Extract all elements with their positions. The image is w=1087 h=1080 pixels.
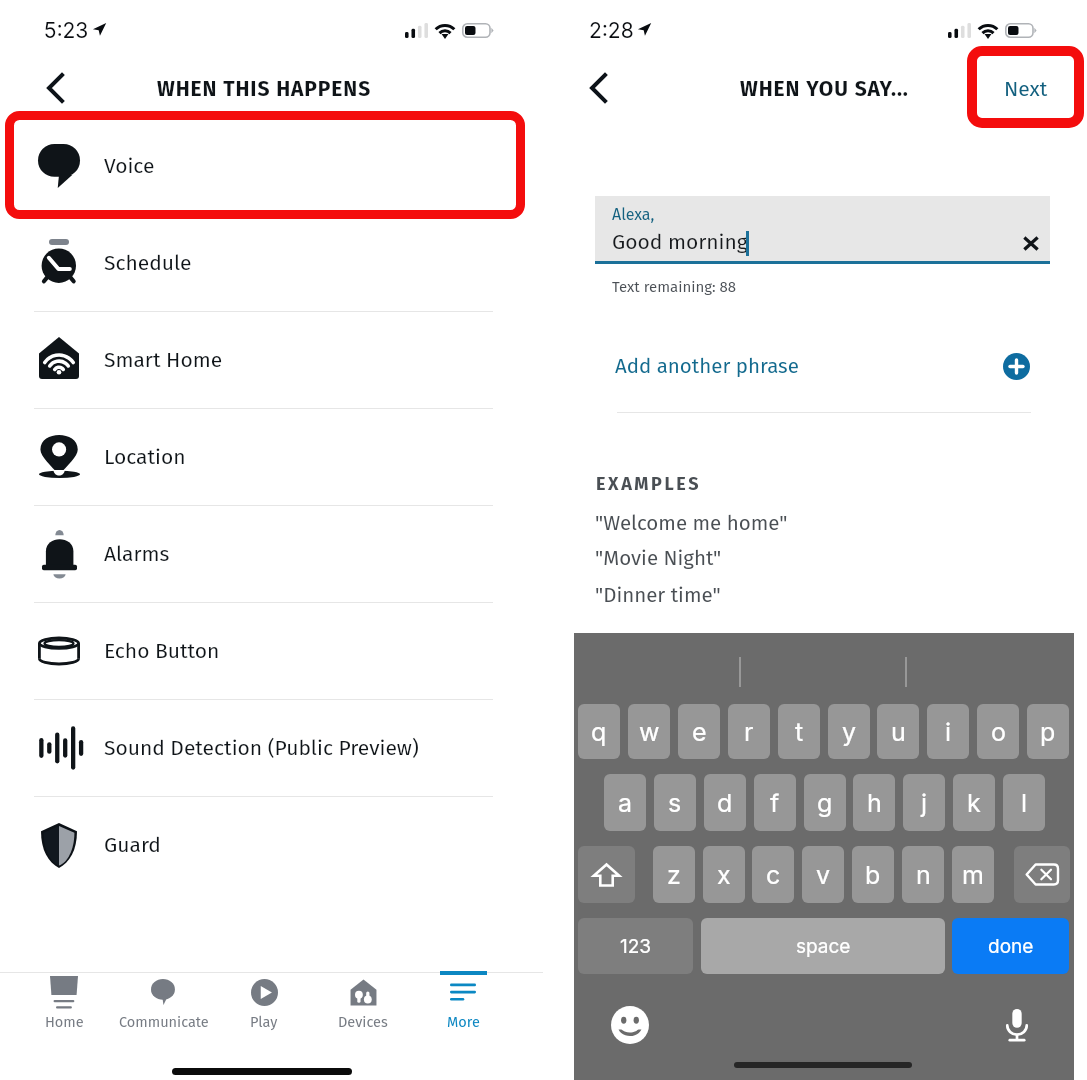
button[interactable]: Back [30,64,78,112]
staticText: Home [45,1013,84,1030]
button[interactable]: done [952,918,1069,974]
staticText: f [770,788,780,818]
staticText: Next [1004,76,1048,101]
button[interactable]: space [701,918,945,974]
button[interactable]: Play [214,973,314,1035]
button[interactable]: Backspace [1014,846,1070,903]
staticText: Text remaining: 88 [612,278,737,296]
staticText: "Dinner time" [595,583,721,608]
button[interactable]: t [778,704,820,759]
button[interactable]: d [704,774,746,831]
button[interactable]: c [752,846,794,903]
staticText: "Movie Night" [595,546,722,571]
staticText: y [842,717,857,747]
button[interactable]: Smart Home [0,311,543,408]
button[interactable]: z [653,846,695,903]
button[interactable]: Schedule [0,214,543,311]
staticText: w [639,717,660,747]
button[interactable]: Location [0,408,543,505]
staticText: Alexa, [612,205,655,224]
staticText: d [717,788,733,818]
staticText: t [795,717,804,747]
staticText: Alarms [104,541,170,566]
button[interactable]: Dictation [999,1005,1035,1045]
staticText: Good morning [612,229,748,254]
button[interactable]: n [902,846,944,903]
staticText: q [591,717,607,747]
button[interactable]: h [853,774,895,831]
staticText: Communicate [119,1013,209,1030]
button[interactable]: m [952,846,994,903]
staticText: "Welcome me home" [595,511,788,536]
button[interactable]: Sound Detection (Public Preview) [0,699,543,796]
staticText: Voice [104,153,155,178]
button[interactable]: j [903,774,945,831]
staticText: k [967,788,981,818]
staticText: v [816,860,831,890]
staticText: h [867,788,882,818]
staticText: i [945,717,952,747]
staticText: 2:28 [589,18,634,43]
staticText: Play [250,1013,278,1030]
staticText: a [618,788,633,818]
button[interactable]: Shift [578,846,635,903]
button[interactable]: Alarms [0,505,543,602]
staticText: Add another phrase [615,354,799,379]
staticText: b [865,860,881,890]
button[interactable]: Voice [0,117,543,214]
button[interactable]: Back [573,64,621,112]
staticText: u [891,717,906,747]
staticText: z [667,860,681,890]
button[interactable]: Guard [0,796,543,893]
staticText: s [668,788,682,818]
staticText: g [817,788,833,818]
button[interactable]: v [802,846,844,903]
staticText: done [988,935,1034,958]
staticText: Smart Home [104,347,223,372]
button[interactable]: e [678,704,720,759]
staticText: c [766,860,781,890]
button[interactable]: k [953,774,995,831]
staticText: Location [104,444,186,469]
button[interactable]: Devices [313,973,413,1035]
button[interactable]: q [578,704,620,759]
button[interactable]: a [604,774,646,831]
staticText: 123 [620,935,652,958]
staticText: Devices [338,1013,388,1030]
button[interactable]: f [754,774,796,831]
staticText: 5:23 [44,18,89,43]
button[interactable]: Clear [1014,227,1047,260]
button[interactable]: Add another phrase [543,340,1087,392]
button[interactable]: g [804,774,846,831]
button[interactable]: w [628,704,670,759]
staticText: Sound Detection (Public Preview) [104,735,419,760]
button[interactable]: Home [14,973,114,1035]
button[interactable]: u [877,704,919,759]
staticText: Echo Button [104,638,220,663]
button[interactable]: b [852,846,894,903]
button[interactable]: Emoji [611,1006,649,1044]
button[interactable]: r [728,704,770,759]
button[interactable]: s [654,774,696,831]
button[interactable]: i [927,704,969,759]
button[interactable]: p [1027,704,1069,759]
button[interactable]: l [1003,774,1045,831]
staticText: Guard [104,832,161,857]
button[interactable]: 123 [578,918,693,974]
staticText: EXAMPLES [596,473,702,495]
staticText: WHEN THIS HAPPENS [157,76,372,101]
button[interactable]: More [413,973,513,1035]
button[interactable]: Echo Button [0,602,543,699]
staticText: WHEN YOU SAY... [740,76,909,101]
button[interactable]: o [977,704,1019,759]
button[interactable]: Next [988,66,1064,111]
staticText: space [796,935,851,958]
staticText: e [692,717,707,747]
button[interactable]: Communicate [114,973,214,1035]
staticText: r [744,717,754,747]
button[interactable]: y [828,704,870,759]
staticText: Schedule [104,250,192,275]
button[interactable]: x [703,846,745,903]
staticText: x [717,860,731,890]
staticText: m [962,860,984,890]
